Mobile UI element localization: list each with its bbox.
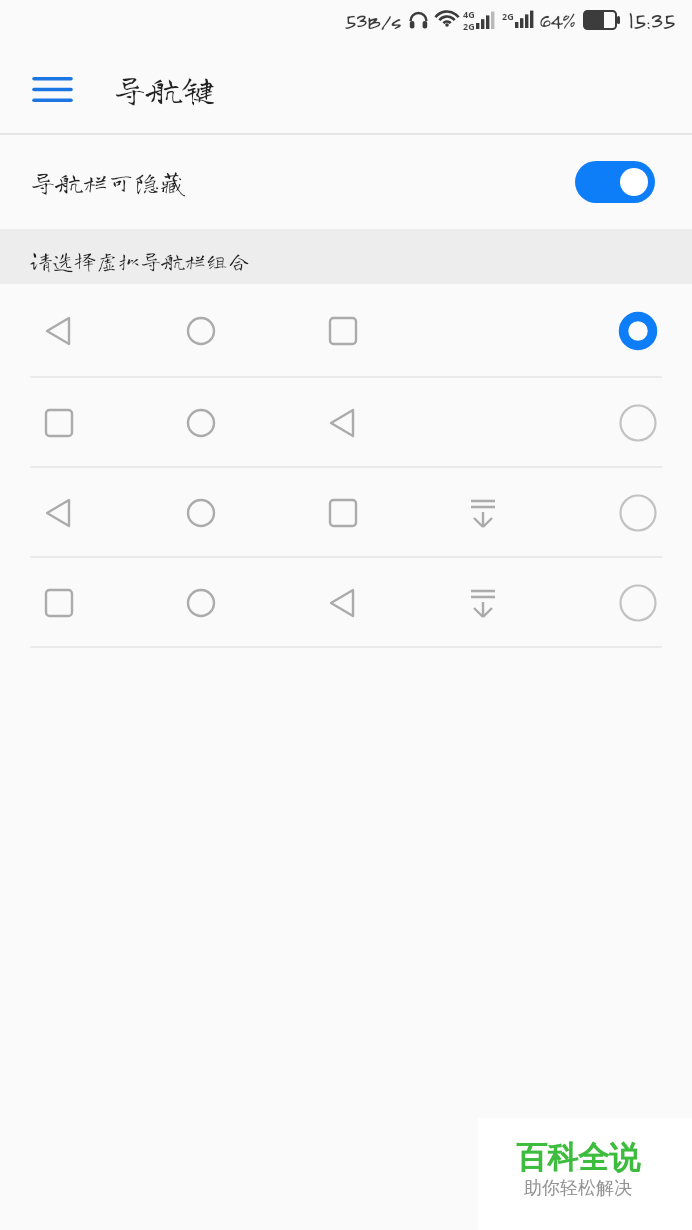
staticText: 64%: [539, 6, 575, 34]
staticText: 2G: [463, 20, 475, 32]
button[interactable]: [575, 161, 655, 203]
staticText: 15:35: [628, 5, 675, 35]
staticText: 4G: [463, 8, 475, 20]
staticText: 请选择虚拟导航栏组合: [30, 250, 251, 272]
button[interactable]: [25, 65, 79, 113]
button[interactable]: [0, 378, 692, 468]
staticText: 2G: [502, 10, 514, 22]
staticText: 导航键: [113, 72, 215, 106]
staticText: 助你轻松解决: [524, 1177, 632, 1200]
button[interactable]: [0, 468, 692, 558]
staticText: 导航栏可隐藏: [30, 169, 187, 195]
staticText: 百科全说: [516, 1138, 640, 1177]
button[interactable]: 导航栏可隐藏: [0, 135, 692, 229]
staticText: 53B/s: [344, 6, 401, 34]
button[interactable]: [0, 284, 692, 378]
button[interactable]: [0, 558, 692, 648]
